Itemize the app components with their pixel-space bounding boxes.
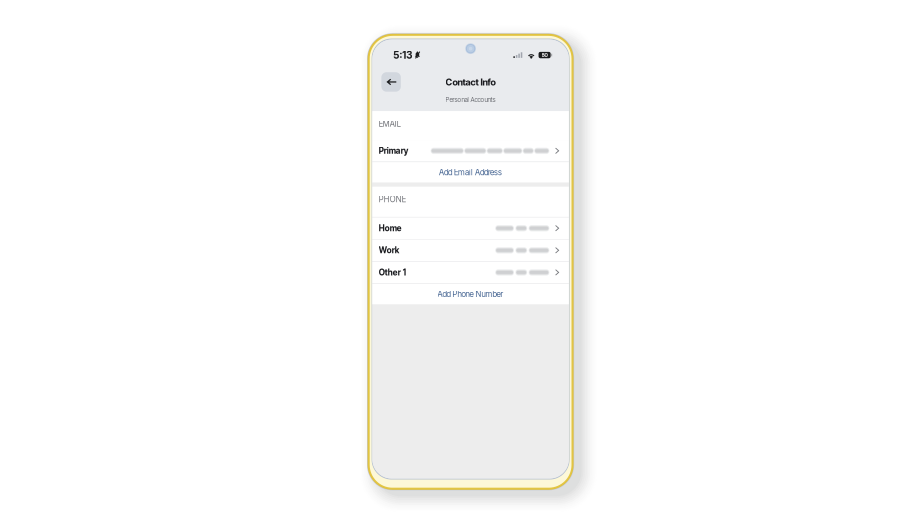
- button[interactable]: Other 1: [372, 262, 569, 283]
- staticText: Add Email Address: [439, 168, 502, 177]
- staticText: 5:13: [393, 49, 412, 61]
- button[interactable]: Add Phone Number: [372, 284, 569, 304]
- button[interactable]: Work: [372, 240, 569, 261]
- staticText: Other 1: [379, 267, 406, 277]
- button[interactable]: Add Email Address: [372, 162, 569, 183]
- staticText: Home: [379, 223, 402, 233]
- staticText: PHONE: [379, 195, 406, 204]
- staticText: Personal Accounts: [446, 96, 496, 103]
- staticText: Work: [379, 245, 400, 255]
- staticText: EMAIL: [379, 119, 401, 129]
- staticText: Primary: [379, 146, 409, 156]
- staticText: 80: [542, 52, 548, 58]
- button[interactable]: Home: [372, 217, 569, 239]
- staticText: Add Phone Number: [438, 289, 504, 299]
- button[interactable]: Primary: [372, 140, 569, 162]
- staticText: Contact Info: [446, 77, 496, 88]
- button[interactable]: Back: [381, 72, 401, 92]
